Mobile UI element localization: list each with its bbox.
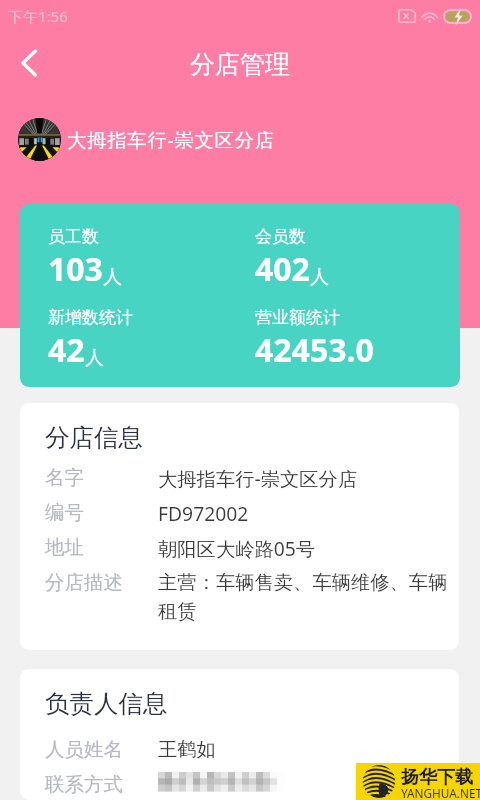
staticText: 营业额统计 [255,307,340,328]
staticText: 大拇指车行-崇文区分店 [67,126,275,152]
staticText: 联系方式 [45,772,123,797]
staticText: 扬华下载 [401,766,473,789]
staticText: 大拇指车行-崇文区分店 [158,465,459,491]
staticText: 名字 [45,465,84,490]
staticText: FD972002 [158,500,459,526]
staticText: 会员数 [255,226,306,247]
staticText: 下午1:56 [8,6,68,26]
staticText: 负责人信息 [45,688,168,719]
staticText: 分店描述 [45,570,123,595]
staticText: 人 [85,346,104,370]
staticText: 主营：车辆售卖、车辆维修、车辆 租赁 [158,570,459,624]
staticText: 新增数统计 [48,307,133,328]
staticText: 分店信息 [45,422,143,453]
button[interactable]: 会员数 [255,226,329,291]
staticText: 王鹤如 [158,737,459,761]
button[interactable]: 营业额统计 [255,307,374,372]
staticText: 编号 [45,500,84,525]
button[interactable]: 员工数 [48,226,122,291]
staticText: 402 [255,247,310,291]
staticText: 人员姓名 [45,737,123,762]
button[interactable]: 新增数统计 [48,307,133,372]
staticText: 地址 [45,535,84,560]
staticText: 人 [103,265,122,289]
staticText: 分店管理 [190,49,290,80]
staticText: 员工数 [48,226,99,247]
staticText: 朝阳区大岭路05号 [158,535,459,561]
button[interactable]: Back [5,39,53,87]
staticText: 42 [48,328,85,372]
staticText: 103 [48,247,103,291]
button[interactable]: 大拇指车行-崇文区分店 [18,116,480,162]
staticText: YANGHUA.NET [401,785,480,800]
staticText: 42453.0 [255,328,374,372]
staticText: 人 [310,265,329,289]
